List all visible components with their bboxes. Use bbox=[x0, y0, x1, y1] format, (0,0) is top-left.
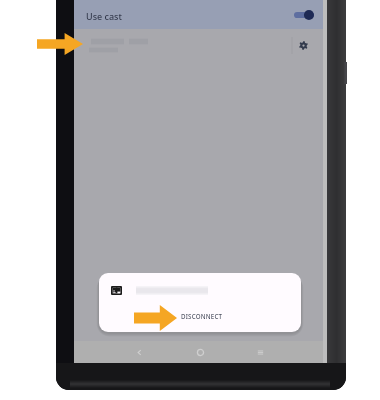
button[interactable]: DISCONNECT bbox=[99, 273, 301, 332]
button[interactable]: Recent apps bbox=[249, 341, 271, 363]
button[interactable]: Use cast bbox=[74, 0, 323, 29]
button[interactable]: Home bbox=[189, 341, 211, 363]
staticText: DISCONNECT bbox=[181, 312, 223, 320]
other: Callout arrow bbox=[37, 33, 83, 55]
button[interactable]: Use cast toggle bbox=[294, 9, 314, 21]
button[interactable]: Back bbox=[128, 341, 150, 363]
button[interactable]: Settings bbox=[74, 29, 323, 61]
button[interactable]: DISCONNECT bbox=[181, 312, 223, 320]
other: Callout arrow bbox=[134, 305, 177, 331]
button[interactable]: Settings bbox=[294, 36, 312, 54]
staticText: Use cast bbox=[86, 10, 122, 22]
